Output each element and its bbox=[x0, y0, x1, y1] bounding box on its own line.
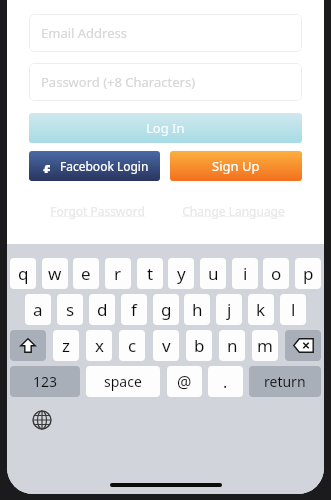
staticText: space bbox=[104, 372, 142, 391]
staticText: q bbox=[18, 262, 29, 285]
staticText: y bbox=[177, 262, 186, 285]
button[interactable]: return bbox=[249, 366, 321, 397]
button[interactable]: o bbox=[263, 258, 289, 289]
staticText: x bbox=[95, 334, 104, 357]
staticText: Email Address bbox=[41, 24, 127, 42]
button[interactable]: m bbox=[252, 330, 278, 361]
staticText: h bbox=[192, 298, 203, 321]
staticText: Facebook Login bbox=[60, 158, 149, 174]
staticText: f bbox=[131, 298, 137, 321]
staticText: d bbox=[97, 298, 108, 321]
button[interactable]: p bbox=[295, 258, 321, 289]
button[interactable]: k bbox=[248, 294, 274, 325]
staticText: b bbox=[194, 334, 205, 357]
staticText: a bbox=[33, 298, 43, 321]
staticText: f bbox=[43, 160, 50, 173]
button[interactable]: r bbox=[105, 258, 131, 289]
button[interactable]: a bbox=[25, 294, 51, 325]
button[interactable]: e bbox=[73, 258, 99, 289]
staticText: return bbox=[264, 372, 306, 391]
staticText: s bbox=[66, 298, 75, 321]
button[interactable]: y bbox=[168, 258, 194, 289]
button[interactable]: Password (+8 Characters) bbox=[29, 63, 302, 101]
button[interactable]: @ bbox=[167, 366, 202, 397]
staticText: i bbox=[243, 262, 248, 285]
staticText: w bbox=[48, 262, 62, 285]
staticText: z bbox=[62, 334, 70, 357]
button[interactable]: Email Address bbox=[29, 14, 302, 52]
staticText: Sign Up bbox=[212, 157, 260, 175]
staticText: Forgot Password bbox=[50, 203, 145, 219]
button[interactable]: c bbox=[119, 330, 145, 361]
button[interactable]: v bbox=[153, 330, 179, 361]
button[interactable]: w bbox=[42, 258, 68, 289]
button[interactable]: g bbox=[153, 294, 179, 325]
staticText: Change Language bbox=[182, 203, 285, 219]
button[interactable]: l bbox=[280, 294, 306, 325]
button[interactable]: s bbox=[57, 294, 83, 325]
button[interactable]: d bbox=[89, 294, 115, 325]
staticText: Log In bbox=[146, 119, 185, 137]
staticText: l bbox=[291, 298, 296, 321]
button[interactable]: space bbox=[86, 366, 160, 397]
button[interactable]: Forgot Password bbox=[29, 203, 165, 219]
button[interactable]: Sign Up bbox=[170, 151, 302, 181]
button[interactable]: Shift bbox=[10, 330, 46, 361]
staticText: m bbox=[257, 334, 273, 357]
button[interactable]: Log In bbox=[29, 113, 302, 143]
button[interactable]: z bbox=[53, 330, 79, 361]
button[interactable]: h bbox=[184, 294, 210, 325]
staticText: j bbox=[227, 298, 232, 321]
staticText: t bbox=[147, 262, 154, 285]
button[interactable]: f bbox=[121, 294, 147, 325]
staticText: v bbox=[162, 334, 171, 357]
staticText: p bbox=[303, 262, 314, 285]
staticText: Password (+8 Characters) bbox=[41, 73, 196, 91]
button[interactable]: q bbox=[10, 258, 36, 289]
staticText: r bbox=[114, 262, 122, 285]
staticText: k bbox=[256, 298, 266, 321]
staticText: g bbox=[161, 298, 172, 321]
staticText: e bbox=[81, 262, 91, 285]
button[interactable]: x bbox=[86, 330, 112, 361]
button[interactable]: b bbox=[186, 330, 212, 361]
button[interactable]: u bbox=[200, 258, 226, 289]
staticText: u bbox=[208, 262, 219, 285]
staticText: n bbox=[227, 334, 238, 357]
button[interactable]: f bbox=[29, 151, 160, 181]
button[interactable]: n bbox=[219, 330, 245, 361]
button[interactable]: Backspace bbox=[285, 330, 321, 361]
button[interactable]: j bbox=[216, 294, 242, 325]
button[interactable]: Change Language bbox=[165, 203, 302, 219]
button[interactable]: i bbox=[232, 258, 258, 289]
staticText: @ bbox=[177, 371, 192, 393]
staticText: 123 bbox=[33, 372, 58, 391]
button[interactable]: Change keyboard language bbox=[29, 407, 55, 433]
button[interactable]: t bbox=[137, 258, 163, 289]
staticText: c bbox=[128, 334, 137, 357]
staticText: . bbox=[223, 371, 228, 393]
button[interactable]: . bbox=[208, 366, 243, 397]
button[interactable]: 123 bbox=[10, 366, 80, 397]
staticText: o bbox=[271, 262, 282, 285]
